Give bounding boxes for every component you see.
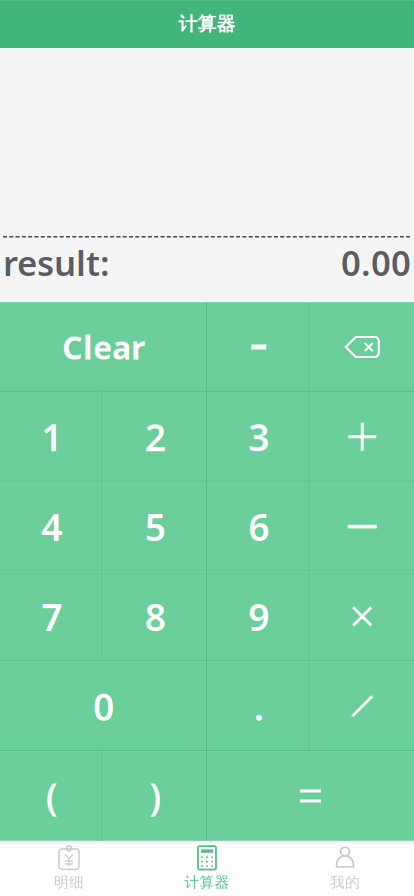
staticText: 9	[248, 592, 269, 641]
staticText: 5	[145, 502, 166, 551]
button[interactable]: 2	[103, 392, 207, 482]
staticText: 明细	[54, 873, 84, 891]
button[interactable]: 8	[103, 571, 207, 661]
button[interactable]: Multiply	[310, 571, 414, 661]
button[interactable]: .	[207, 661, 310, 751]
button[interactable]: 我的	[276, 841, 414, 896]
staticText: .	[254, 681, 264, 731]
staticText: 3	[248, 412, 269, 462]
button[interactable]: (	[0, 751, 103, 841]
button[interactable]: 明细	[0, 841, 138, 896]
button[interactable]: Negate	[207, 302, 310, 392]
button[interactable]: Delete	[310, 302, 414, 392]
staticText: 0	[93, 681, 114, 731]
staticText: 我的	[330, 873, 360, 891]
button[interactable]: Equals	[207, 751, 414, 841]
button[interactable]: 9	[207, 571, 310, 661]
staticText: 7	[41, 592, 62, 641]
button[interactable]: Plus	[310, 392, 414, 482]
button[interactable]: 5	[103, 482, 207, 571]
staticText: )	[149, 771, 161, 821]
button[interactable]: Divide	[310, 661, 414, 751]
staticText: 6	[248, 502, 269, 551]
button[interactable]: 计算器	[138, 841, 276, 896]
staticText: 计算器	[178, 13, 235, 35]
button[interactable]: Minus	[310, 482, 414, 571]
staticText: 4	[41, 502, 62, 551]
staticText: result:	[3, 239, 110, 285]
button[interactable]: Clear	[0, 302, 207, 392]
button[interactable]: 1	[0, 392, 103, 482]
button[interactable]: 0	[0, 661, 207, 751]
button[interactable]: 7	[0, 571, 103, 661]
staticText: Clear	[62, 326, 145, 368]
staticText: (	[46, 771, 58, 821]
button[interactable]: 4	[0, 482, 103, 571]
staticText: 8	[145, 592, 166, 641]
staticText: 0.00	[341, 239, 411, 285]
button[interactable]: 3	[207, 392, 310, 482]
button[interactable]: 6	[207, 482, 310, 571]
staticText: 2	[145, 412, 166, 462]
staticText: 1	[41, 412, 62, 462]
staticText: 计算器	[184, 873, 229, 891]
button[interactable]: )	[103, 751, 207, 841]
